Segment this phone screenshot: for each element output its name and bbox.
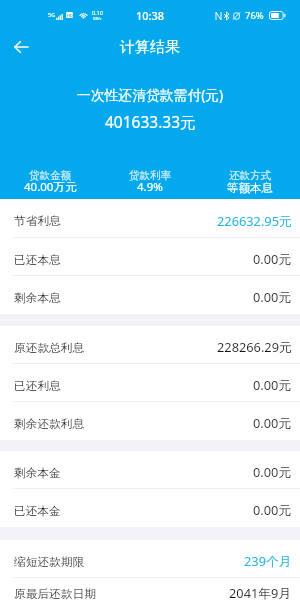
button[interactable]: 节省利息 (0, 199, 300, 238)
staticText: 原还款总利息 (14, 341, 85, 356)
staticText: 5G (48, 11, 56, 18)
staticText: 0.00元 (253, 463, 292, 480)
staticText: 401633.33元 (105, 111, 196, 132)
staticText: 0.10 (92, 9, 103, 16)
staticText: 10:38 (136, 8, 165, 23)
staticText: 剩余还款利息 (14, 417, 85, 432)
staticText: 计算结果 (120, 38, 180, 57)
staticText: 0.00元 (253, 414, 292, 431)
staticText: 4.9% (137, 179, 163, 195)
button[interactable]: 剩余本息 (0, 276, 300, 314)
staticText: 缩短还款期限 (14, 555, 85, 570)
staticText: 剩余本金 (14, 466, 61, 481)
button[interactable]: 原还款总利息 (0, 326, 300, 364)
button[interactable]: 剩余本金 (0, 451, 300, 489)
staticText: 节省利息 (14, 214, 61, 229)
button[interactable]: 已还本息 (0, 238, 300, 276)
staticText: 2041年9月 (229, 584, 292, 600)
staticText: 226632.95元 (217, 212, 292, 229)
button[interactable]: 已还本金 (0, 489, 300, 527)
staticText: 0.00元 (253, 501, 292, 518)
button[interactable]: 已还利息 (0, 364, 300, 402)
staticText: 一次性还清贷款需付(元) (77, 85, 224, 104)
staticText: 40.00万元 (24, 179, 77, 195)
staticText: 0.00元 (253, 376, 292, 393)
staticText: 贷款金额 (29, 169, 71, 182)
staticText: 剩余本息 (14, 291, 61, 306)
staticText: 76% (245, 9, 264, 22)
button[interactable]: 缩短还款期限 (0, 540, 300, 578)
staticText: 已还本息 (14, 253, 61, 268)
staticText: 已还本金 (14, 504, 61, 519)
staticText: 228266.29元 (217, 338, 292, 355)
staticText: 已还利息 (14, 379, 61, 394)
button[interactable]: 原最后还款日期 (0, 578, 300, 600)
button[interactable]: Back (0, 30, 42, 64)
staticText: 0.00元 (253, 288, 292, 305)
staticText: 还款方式 (229, 169, 271, 182)
staticText: HD (67, 13, 73, 18)
staticText: 贷款利率 (129, 169, 171, 182)
button[interactable]: 剩余还款利息 (0, 402, 300, 440)
staticText: KB/s (93, 16, 102, 21)
staticText: 0.00元 (253, 250, 292, 267)
staticText: 239个月 (244, 552, 292, 569)
staticText: 原最后还款日期 (14, 587, 96, 600)
staticText: 等额本息 (227, 181, 273, 195)
